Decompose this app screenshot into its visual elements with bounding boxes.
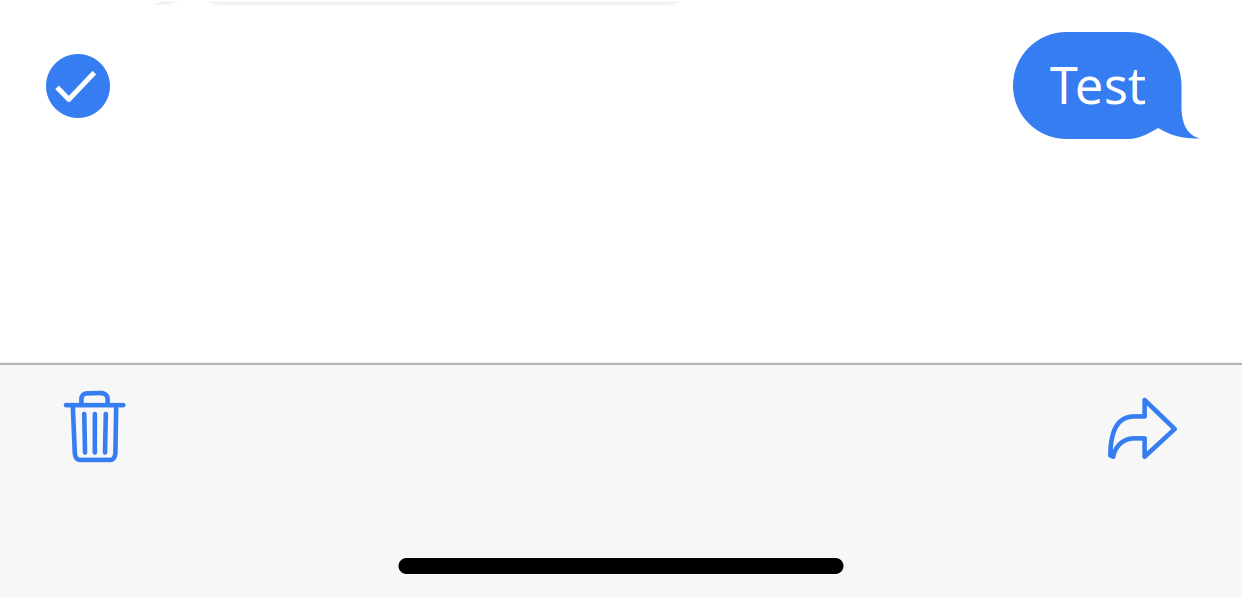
button[interactable]: Delete xyxy=(40,367,149,486)
button[interactable]: Message selected xyxy=(46,54,110,118)
button[interactable]: Test xyxy=(1013,32,1200,139)
button[interactable]: Forward xyxy=(1084,372,1201,485)
staticText: Test xyxy=(1050,51,1146,118)
